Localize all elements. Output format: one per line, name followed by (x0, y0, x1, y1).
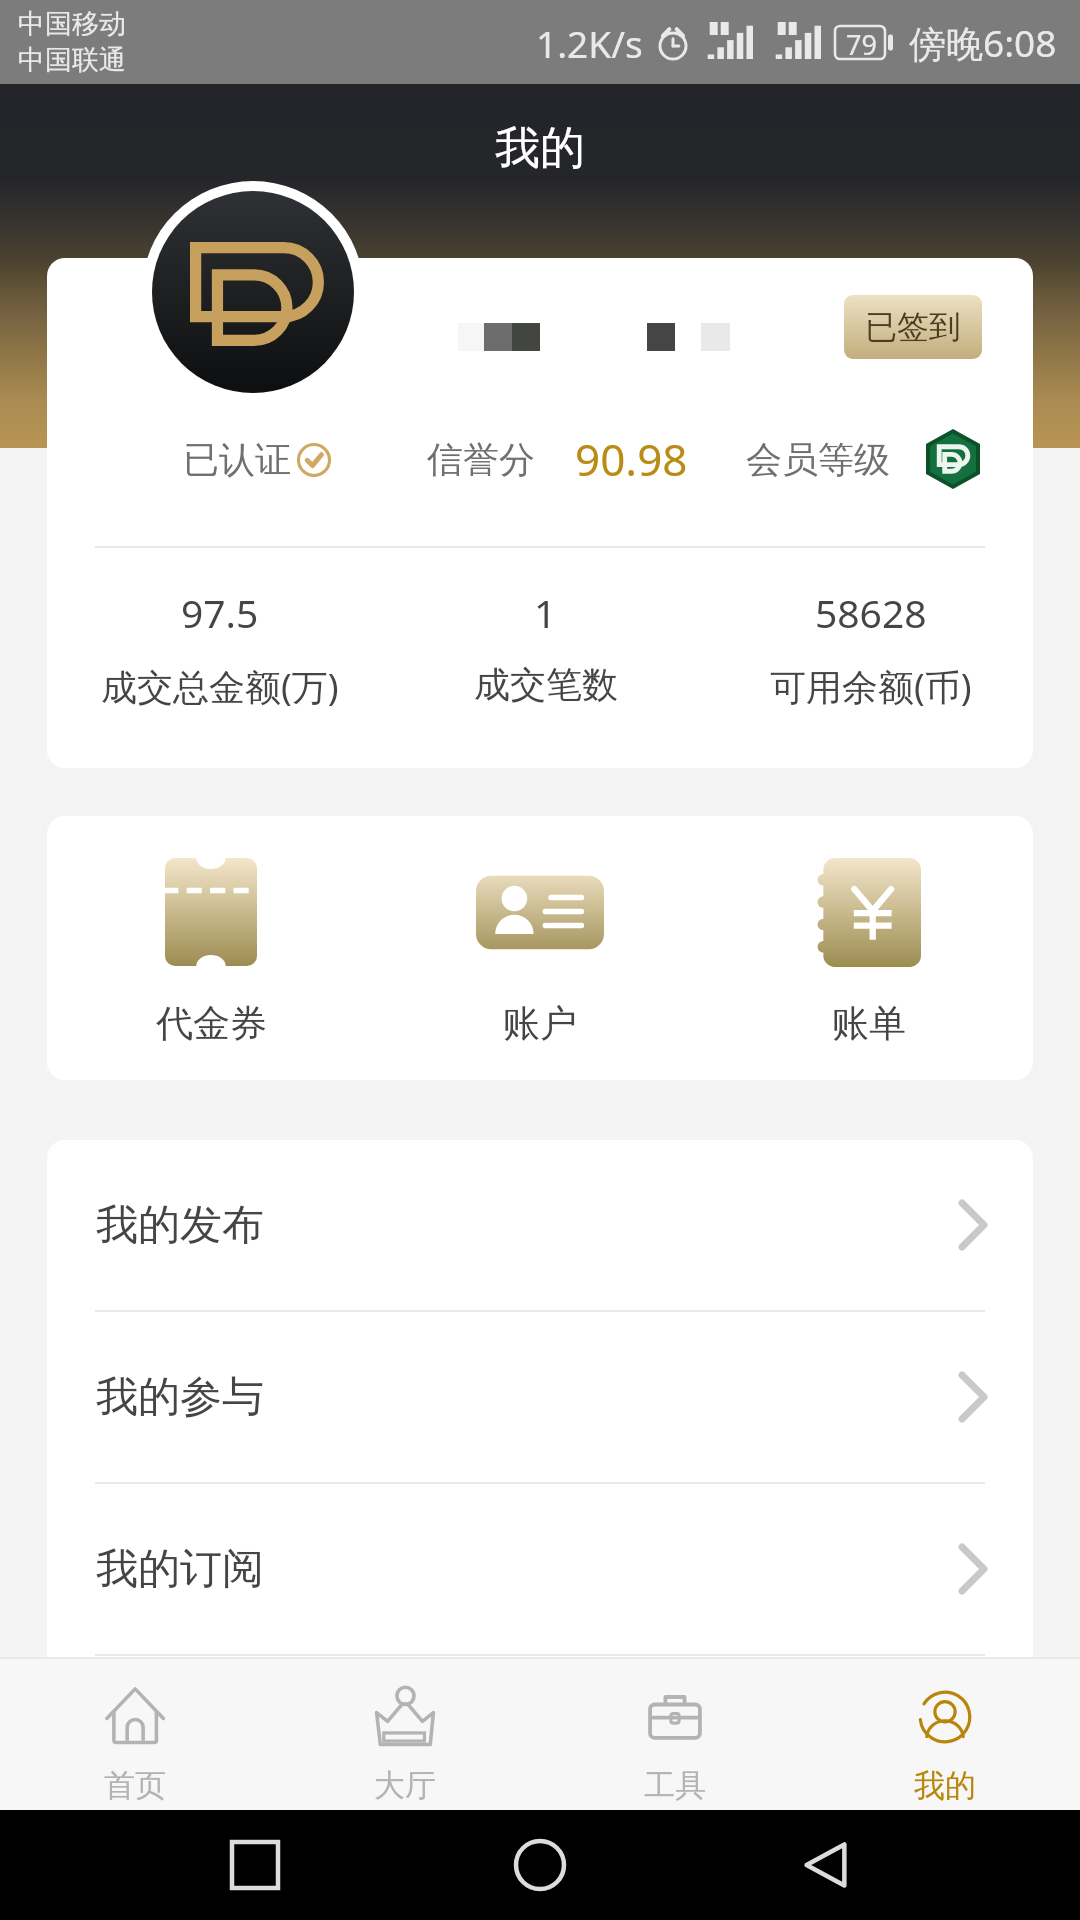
staticText: 已签到 (865, 307, 961, 347)
staticText: 1 (534, 586, 557, 639)
button[interactable]: 账单 (704, 858, 1033, 1047)
staticText: 我的订阅 (96, 1543, 264, 1596)
staticText: 我的参与 (96, 1371, 264, 1424)
button[interactable]: Back (795, 1834, 857, 1896)
button[interactable]: Home (509, 1834, 571, 1896)
button[interactable]: 我的发布 (47, 1140, 1033, 1310)
staticText: 会员等级 (746, 437, 890, 482)
staticText: 代金券 (156, 1000, 267, 1047)
staticText: 我的 (495, 120, 585, 177)
button[interactable]: 账户 (375, 858, 704, 1047)
staticText: 成交笔数 (474, 662, 618, 707)
button[interactable]: 58628 (708, 586, 1033, 711)
staticText: 97.5 (181, 586, 259, 639)
button[interactable]: Profile avatar (142, 181, 364, 403)
staticText: 账单 (832, 1000, 906, 1047)
button[interactable]: 大厅 (270, 1657, 540, 1810)
button[interactable]: 已签到 (844, 295, 982, 359)
staticText: 傍晚6:08 (909, 17, 1057, 68)
staticText: 大厅 (374, 1766, 436, 1805)
button[interactable]: 我的收藏 (47, 1656, 1033, 1826)
button[interactable]: 1 (383, 586, 708, 707)
staticText: 我的收藏 (96, 1715, 264, 1768)
staticText: 中国移动 (18, 7, 126, 41)
staticText: 可用余额(币) (770, 662, 972, 711)
staticText: 90.98 (575, 429, 688, 489)
staticText: 58628 (815, 586, 927, 639)
button[interactable]: 首页 (0, 1657, 270, 1810)
staticText: 信誉分 (427, 437, 535, 482)
button[interactable]: 我的 (810, 1657, 1080, 1810)
button[interactable]: 代金券 (47, 858, 375, 1047)
staticText: 我的发布 (96, 1199, 264, 1252)
staticText: 79 (846, 26, 877, 59)
staticText: 成交总金额(万) (101, 662, 339, 711)
staticText: 账户 (503, 1000, 577, 1047)
button[interactable]: Recents (224, 1834, 286, 1896)
button[interactable]: 我的参与 (47, 1312, 1033, 1482)
staticText: 已认证 (183, 437, 291, 482)
staticText: 中国联通 (18, 43, 126, 77)
button[interactable]: 工具 (540, 1657, 810, 1810)
staticText: 首页 (104, 1766, 166, 1805)
button[interactable]: 97.5 (57, 586, 383, 711)
button[interactable]: 已认证 (183, 437, 331, 482)
staticText: 1.2K/s (536, 18, 643, 68)
staticText: 工具 (644, 1766, 706, 1805)
staticText: 我的 (914, 1766, 976, 1805)
button[interactable]: 我的订阅 (47, 1484, 1033, 1654)
